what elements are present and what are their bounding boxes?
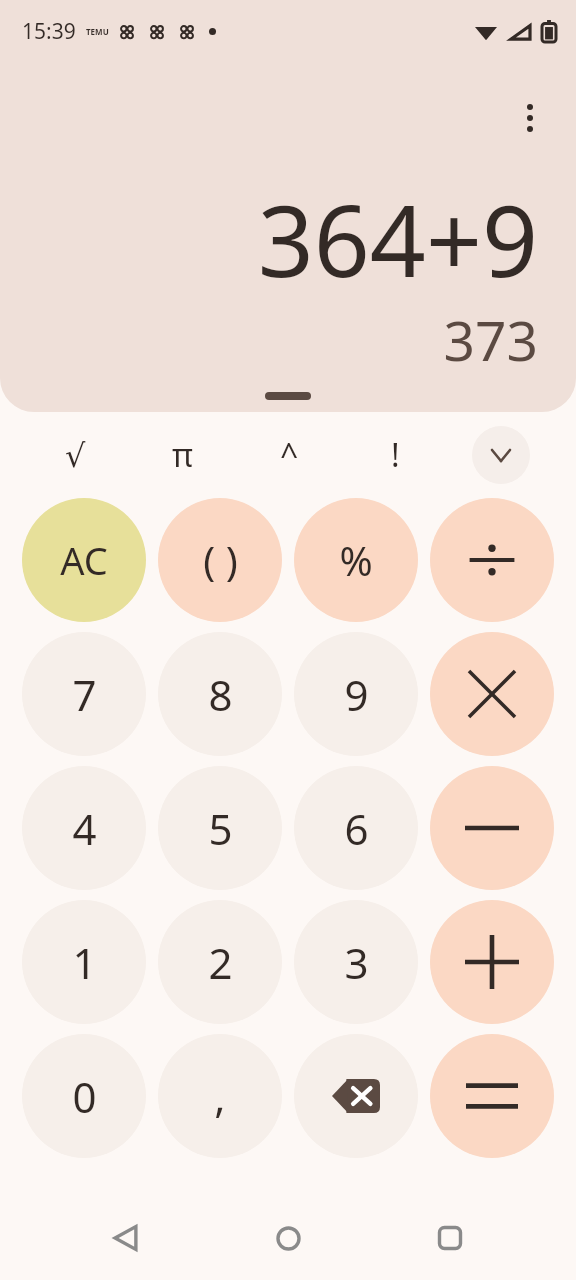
button[interactable]: % — [294, 498, 418, 622]
staticText: 4 — [72, 800, 97, 857]
button[interactable]: 1 — [22, 900, 146, 1024]
staticText: 7 — [72, 666, 97, 723]
staticText: √ — [65, 437, 86, 474]
button[interactable]: Drag handle — [265, 392, 311, 400]
button[interactable]: Multiply — [430, 632, 554, 756]
button[interactable]: 8 — [158, 632, 282, 756]
button[interactable]: 0 — [22, 1034, 146, 1158]
button[interactable]: 4 — [22, 766, 146, 890]
button[interactable]: Plus — [430, 900, 554, 1024]
staticText: 373 — [443, 302, 538, 377]
staticText: , — [214, 1068, 226, 1125]
staticText: ! — [391, 433, 400, 477]
staticText: 6 — [344, 800, 369, 857]
button[interactable]: ! — [342, 420, 448, 490]
button[interactable]: 5 — [158, 766, 282, 890]
staticText: 15:39 — [22, 17, 76, 46]
button[interactable]: Expand — [472, 426, 530, 484]
button[interactable]: 7 — [22, 632, 146, 756]
button[interactable]: Back — [90, 1202, 162, 1274]
staticText: 0 — [72, 1068, 97, 1125]
staticText: 364+9 — [257, 172, 538, 305]
staticText: π — [172, 433, 193, 477]
button[interactable]: AC — [22, 498, 146, 622]
button[interactable]: 3 — [294, 900, 418, 1024]
staticText: 5 — [208, 800, 233, 857]
button[interactable]: π — [129, 420, 236, 490]
button[interactable]: Home — [252, 1202, 324, 1274]
button[interactable]: Recents — [414, 1202, 486, 1274]
button[interactable]: Divide — [430, 498, 554, 622]
button[interactable]: Equals — [430, 1034, 554, 1158]
staticText: AC — [60, 534, 108, 586]
button[interactable]: , — [158, 1034, 282, 1158]
staticText: 2 — [208, 934, 233, 991]
button[interactable]: √ — [22, 420, 129, 490]
button[interactable]: ( ) — [158, 498, 282, 622]
button[interactable]: Minus — [430, 766, 554, 890]
staticText: % — [339, 533, 373, 587]
staticText: 3 — [344, 934, 369, 991]
button[interactable]: More options — [502, 90, 558, 146]
button[interactable]: 9 — [294, 632, 418, 756]
button[interactable]: Backspace — [294, 1034, 418, 1158]
button[interactable]: ^ — [236, 420, 342, 490]
button[interactable]: 6 — [294, 766, 418, 890]
button[interactable]: 2 — [158, 900, 282, 1024]
staticText: ( ) — [203, 533, 238, 587]
staticText: TEMU — [86, 26, 109, 37]
staticText: 8 — [208, 666, 233, 723]
staticText: 9 — [344, 666, 369, 723]
staticText: 1 — [72, 934, 97, 991]
staticText: ^ — [280, 433, 299, 477]
